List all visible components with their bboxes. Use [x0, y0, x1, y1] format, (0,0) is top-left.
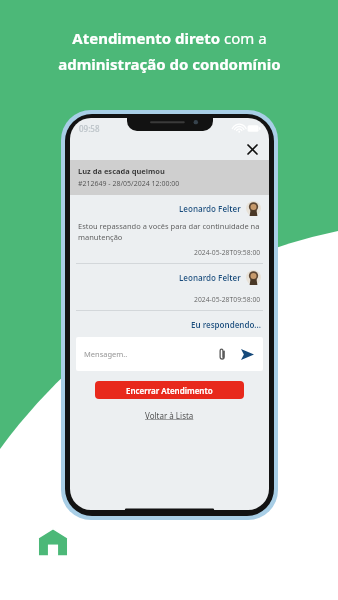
- button[interactable]: Anexar arquivo: [215, 347, 229, 361]
- staticText: Leonardo Felter: [179, 272, 241, 283]
- button[interactable]: Encerrar Atendimento: [95, 381, 244, 399]
- button[interactable]: Fechar: [244, 141, 260, 157]
- staticText: administração do condomínio: [58, 54, 281, 74]
- staticText: Estou repassando a vocês para dar contin…: [78, 221, 261, 242]
- button[interactable]: Voltar à Lista: [139, 408, 200, 423]
- staticText: Mensagem..: [84, 349, 128, 359]
- staticText: #212649 - 28/05/2024 12:00:00: [78, 179, 180, 189]
- staticText: Eu respondendo...: [191, 319, 261, 330]
- staticText: 09:58: [79, 123, 100, 134]
- staticText: Encerrar Atendimento: [126, 385, 213, 396]
- staticText: Leonardo Felter: [179, 203, 241, 214]
- staticText: 2024-05-28T09:58:00: [194, 295, 261, 304]
- staticText: Voltar à Lista: [145, 410, 194, 421]
- button[interactable]: Mensagem..: [76, 337, 263, 371]
- button[interactable]: Enviar mensagem: [239, 346, 255, 362]
- staticText: Luz da escada queimou: [78, 166, 165, 176]
- staticText: Atendimento direto com a: [72, 28, 267, 48]
- staticText: 2024-05-28T09:58:00: [194, 248, 261, 257]
